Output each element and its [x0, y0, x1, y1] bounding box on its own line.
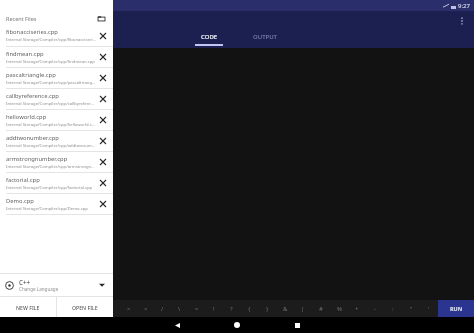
staticText: OUTPUT [253, 33, 277, 41]
staticText: Internal Storage/Compiler/cpp/helloworld… [6, 122, 96, 128]
button[interactable]: | [294, 300, 312, 317]
button[interactable]: } [258, 300, 276, 317]
staticText: % [337, 305, 342, 313]
button[interactable]: Remove [96, 155, 110, 169]
staticText: Internal Storage/Compiler/cpp/addtwonumb… [6, 143, 96, 149]
button[interactable]: Remove [96, 50, 110, 64]
button[interactable]: / [154, 300, 171, 317]
staticText: & [283, 305, 288, 313]
staticText: > [127, 305, 131, 313]
button[interactable]: factorial.cpp [0, 173, 113, 193]
button[interactable]: % [330, 300, 348, 317]
button[interactable]: C++ [0, 274, 113, 296]
button[interactable]: Demo.cpp [0, 194, 113, 214]
staticText: RUN [450, 305, 463, 312]
staticText: Demo.cpp [6, 197, 34, 205]
button[interactable]: { [240, 300, 258, 317]
staticText: ' [428, 305, 430, 313]
button[interactable]: Remove [96, 92, 110, 106]
staticText: " [410, 305, 413, 313]
button[interactable]: callbyreference.cpp [0, 89, 113, 109]
staticText: findmean.cpp [6, 50, 44, 58]
button[interactable]: \ [171, 300, 188, 317]
button[interactable]: addtwonumber.cpp [0, 131, 113, 151]
staticText: Internal Storage/Compiler/cpp/Demo.cpp [6, 206, 88, 212]
button[interactable]: Home [228, 317, 246, 333]
button[interactable]: Remove [96, 197, 110, 211]
button[interactable]: + [348, 300, 366, 317]
staticText: : [392, 305, 394, 313]
button[interactable]: Remove [96, 113, 110, 127]
button[interactable]: pascaltriangle.cpp [0, 68, 113, 88]
staticText: } [266, 305, 269, 313]
button[interactable]: Remove [96, 29, 110, 43]
staticText: factorial.cpp [6, 176, 40, 184]
staticText: \ [178, 305, 181, 313]
button[interactable]: OUTPUT [242, 33, 288, 46]
button[interactable]: & [276, 300, 294, 317]
button[interactable]: ? [222, 300, 240, 317]
staticText: / [161, 305, 164, 313]
button[interactable]: " [402, 300, 420, 317]
staticText: C++ [19, 278, 31, 286]
button[interactable]: Back [168, 317, 186, 333]
staticText: OPEN FILE [72, 304, 98, 311]
button[interactable]: fibonacciseries.cpp [0, 25, 113, 46]
button[interactable]: > [120, 300, 137, 317]
staticText: NEW FILE [16, 304, 40, 311]
staticText: Internal Storage/Compiler/cpp/findmean.c… [6, 59, 95, 65]
button[interactable]: < [137, 300, 154, 317]
button[interactable]: Remove [96, 71, 110, 85]
staticText: callbyreference.cpp [6, 92, 59, 100]
staticText: Internal Storage/Compiler/cpp/factorial.… [6, 185, 93, 191]
staticText: ! [213, 305, 215, 313]
staticText: addtwonumber.cpp [6, 134, 59, 142]
button[interactable]: More options [454, 13, 470, 29]
button[interactable]: helloworld.cpp [0, 110, 113, 130]
staticText: Internal Storage/Compiler/cpp/armstrongn… [6, 164, 95, 170]
staticText: < [144, 305, 148, 313]
button[interactable]: armstrongnumber.cpp [0, 152, 113, 172]
staticText: Internal Storage/Compiler/cpp/callbyrefe… [6, 101, 96, 107]
staticText: Change Language [19, 286, 59, 292]
staticText: + [355, 305, 359, 313]
button[interactable]: Remove [96, 176, 110, 190]
staticText: - [374, 305, 376, 313]
button[interactable]: RUN [438, 300, 474, 317]
button[interactable]: = [188, 300, 205, 317]
staticText: Internal Storage/Compiler/cpp/fibonaccis… [6, 37, 96, 43]
staticText: CODE [201, 33, 218, 41]
staticText: pascaltriangle.cpp [6, 71, 56, 79]
staticText: armstrongnumber.cpp [6, 155, 68, 163]
button[interactable]: OPEN FILE [57, 297, 113, 317]
staticText: = [195, 305, 199, 313]
button[interactable]: NEW FILE [0, 297, 56, 317]
staticText: { [248, 305, 251, 313]
staticText: helloworld.cpp [6, 113, 47, 121]
staticText: 9:27 [458, 2, 470, 10]
staticText: Internal Storage/Compiler/cpp/pascaltria… [6, 80, 96, 86]
button[interactable]: Browse folder [95, 12, 107, 24]
button[interactable]: findmean.cpp [0, 47, 113, 67]
button[interactable]: CODE [186, 33, 232, 46]
staticText: | [301, 305, 305, 313]
staticText: Recent Files [6, 15, 37, 22]
button[interactable]: ! [205, 300, 222, 317]
staticText: ? [230, 305, 233, 313]
button[interactable]: # [312, 300, 330, 317]
button[interactable]: Recents [288, 317, 306, 333]
button[interactable]: Change language [96, 279, 108, 291]
button[interactable]: Remove [96, 134, 110, 148]
staticText: fibonacciseries.cpp [6, 28, 58, 36]
staticText: # [319, 305, 323, 313]
